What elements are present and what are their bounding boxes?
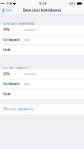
button[interactable]: Hasło bbox=[0, 89, 84, 99]
staticText: Hasło bbox=[3, 92, 11, 96]
staticText: internet bbox=[24, 28, 36, 32]
button[interactable]: APN bbox=[0, 69, 84, 79]
staticText: 18:36 bbox=[39, 2, 47, 5]
staticText: DANE SIECI KOMÓRKOWEJ bbox=[3, 22, 34, 25]
button[interactable]: APN bbox=[0, 25, 84, 35]
staticText: Wyzeruj ustawienia bbox=[3, 108, 33, 111]
button[interactable]: Wyzeruj ustawienia bbox=[0, 104, 84, 114]
staticText: APN bbox=[3, 28, 9, 32]
staticText: Użytkownik bbox=[3, 38, 20, 42]
button[interactable]: Użytkownik bbox=[0, 79, 84, 89]
button[interactable]: Hasło bbox=[0, 45, 84, 55]
button[interactable]: Sieć bbox=[0, 7, 15, 14]
staticText: APN bbox=[3, 72, 9, 76]
staticText: Dane sieci komórkowej bbox=[23, 9, 61, 12]
staticText: 68% bbox=[69, 2, 76, 5]
staticText: Hasło bbox=[3, 48, 11, 52]
staticText: Play bbox=[7, 2, 12, 5]
staticText: Użytkownik bbox=[3, 82, 20, 86]
staticText: Sieć bbox=[5, 9, 12, 12]
staticText: HOTSPOT OSOBISTY bbox=[3, 67, 29, 69]
button[interactable]: Użytkownik bbox=[0, 35, 84, 45]
staticText: ppp bbox=[24, 82, 30, 86]
staticText: ppp bbox=[24, 38, 30, 42]
staticText: internet bbox=[24, 72, 36, 76]
